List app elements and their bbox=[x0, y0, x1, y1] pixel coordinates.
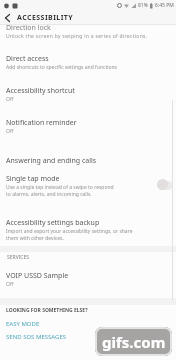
staticText: them with other devices. bbox=[6, 235, 64, 242]
staticText: Use a single tap instead of a swipe to r… bbox=[6, 184, 114, 191]
button[interactable]: SEND SOS MESSAGES bbox=[0, 331, 176, 343]
staticText: VOIP USSD Sample bbox=[6, 271, 69, 281]
staticText: LOOKING FOR SOMETHING ELSE? bbox=[6, 307, 88, 314]
staticText: 81% bbox=[138, 2, 148, 9]
staticText: Single tap mode bbox=[6, 174, 60, 184]
staticText: Import and export your accessibility set… bbox=[6, 228, 133, 235]
staticText: Add shortcuts to specific settings and f… bbox=[6, 64, 117, 71]
staticText: Accessibility shortcut bbox=[6, 86, 75, 96]
staticText: Unlock the screen by swiping in a series… bbox=[6, 33, 148, 40]
button[interactable]: EASY MODE bbox=[0, 318, 176, 330]
button[interactable]: Single tap mode bbox=[0, 173, 176, 205]
staticText: to alarms, alerts, and incoming calls. bbox=[6, 191, 92, 198]
staticText: gifs.com bbox=[102, 332, 166, 352]
staticText: Off bbox=[6, 281, 14, 288]
staticText: ACCESSIBILITY bbox=[17, 13, 74, 23]
button[interactable]: Direct access bbox=[0, 53, 176, 79]
staticText: Off bbox=[6, 96, 14, 103]
button[interactable]: Direction lock bbox=[0, 22, 176, 44]
button[interactable]: Accessibility shortcut bbox=[0, 85, 176, 111]
button[interactable]: Answering and ending calls bbox=[0, 155, 176, 171]
button[interactable]: Notification reminder bbox=[0, 117, 176, 143]
button[interactable] bbox=[0, 11, 14, 24]
staticText: SERVICES bbox=[7, 254, 30, 261]
staticText: 6:45 PM bbox=[155, 2, 174, 9]
staticText: Off bbox=[6, 128, 14, 135]
staticText: SEND SOS MESSAGES bbox=[6, 333, 67, 341]
staticText: Notification reminder bbox=[6, 118, 77, 128]
staticText: Direction lock bbox=[6, 23, 51, 33]
button[interactable]: VOIP USSD Sample bbox=[0, 270, 176, 296]
staticText: Answering and ending calls bbox=[6, 156, 97, 166]
staticText: EASY MODE bbox=[6, 320, 40, 328]
staticText: Accessibility settings backup bbox=[6, 218, 100, 228]
button[interactable]: Accessibility settings backup bbox=[0, 217, 176, 249]
staticText: Direct access bbox=[6, 54, 49, 64]
